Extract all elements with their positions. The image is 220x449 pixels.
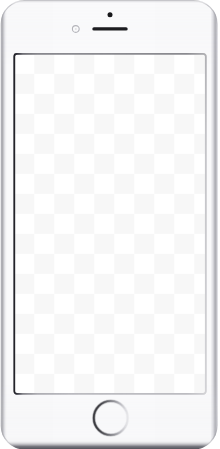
button[interactable]: Phone mockup: [0, 0, 220, 449]
